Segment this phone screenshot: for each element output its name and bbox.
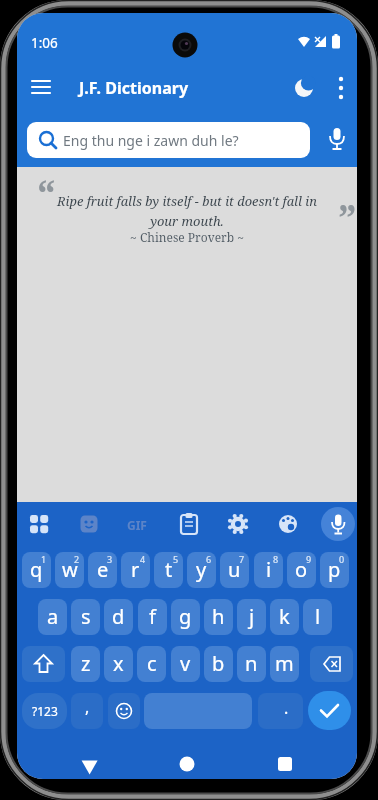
button[interactable] xyxy=(22,646,65,682)
button[interactable]: , xyxy=(71,693,103,729)
staticText: ~ Chinese Proverb ~ xyxy=(17,229,357,245)
button[interactable]: h xyxy=(204,599,233,635)
button[interactable]: u xyxy=(220,552,249,588)
button[interactable]: l xyxy=(303,599,332,635)
staticText: t xyxy=(165,556,173,583)
staticText: z xyxy=(81,650,91,677)
staticText: q xyxy=(30,556,43,583)
staticText: , xyxy=(85,696,90,718)
staticText: 7 xyxy=(239,553,245,565)
staticText: j xyxy=(249,603,255,630)
staticText: l xyxy=(315,603,321,630)
button[interactable] xyxy=(321,507,355,541)
button[interactable] xyxy=(263,748,303,779)
button[interactable]: q xyxy=(22,552,51,588)
button[interactable]: GIF xyxy=(127,517,147,533)
button[interactable]: t xyxy=(154,552,183,588)
staticText: 4 xyxy=(140,553,146,565)
staticText: “ xyxy=(37,167,56,219)
button[interactable]: y xyxy=(187,552,216,588)
staticText: o xyxy=(295,556,308,583)
staticText: r xyxy=(131,556,140,583)
button[interactable] xyxy=(289,73,319,103)
button[interactable]: w xyxy=(55,552,84,588)
button[interactable] xyxy=(25,73,57,103)
staticText: 1:06 xyxy=(31,34,58,52)
staticText: p xyxy=(328,556,341,583)
button[interactable] xyxy=(224,510,252,538)
staticText: 8 xyxy=(273,553,279,565)
staticText: e xyxy=(97,556,109,583)
button[interactable] xyxy=(323,125,351,155)
staticText: . xyxy=(284,697,289,719)
staticText: d xyxy=(112,603,125,630)
staticText: x xyxy=(113,650,124,677)
staticText: J.F. Dictionary xyxy=(79,77,189,99)
staticText: 0 xyxy=(339,553,345,565)
button[interactable]: ?123 xyxy=(22,693,67,729)
button[interactable]: a xyxy=(38,599,67,635)
button[interactable]: j xyxy=(237,599,266,635)
button[interactable]: k xyxy=(270,599,299,635)
button[interactable]: r xyxy=(121,552,150,588)
button[interactable]: n xyxy=(237,646,266,682)
staticText: Ripe fruit falls by itself - but it does… xyxy=(17,192,357,229)
button[interactable]: p xyxy=(320,552,349,588)
button[interactable]: f xyxy=(138,599,167,635)
staticText: g xyxy=(179,603,192,630)
button[interactable]: z xyxy=(71,646,100,682)
button[interactable] xyxy=(25,510,53,538)
staticText: a xyxy=(47,603,59,630)
button[interactable] xyxy=(75,510,103,538)
staticText: v xyxy=(180,650,191,677)
staticText: i xyxy=(266,556,272,583)
button[interactable]: g xyxy=(171,599,200,635)
staticText: 3 xyxy=(107,553,113,565)
staticText: w xyxy=(62,556,78,583)
button[interactable]: d xyxy=(104,599,133,635)
staticText: n xyxy=(245,650,258,677)
button[interactable]: Eng thu nge i zawn duh le? xyxy=(27,122,310,158)
staticText: 1 xyxy=(41,553,47,565)
button[interactable]: v xyxy=(171,646,200,682)
staticText: 5 xyxy=(173,553,179,565)
staticText: 6 xyxy=(206,553,212,565)
button[interactable]: o xyxy=(287,552,316,588)
button[interactable]: . xyxy=(258,693,303,729)
button[interactable] xyxy=(108,693,140,729)
staticText: h xyxy=(212,603,225,630)
button[interactable]: e xyxy=(88,552,117,588)
staticText: c xyxy=(147,650,157,677)
button[interactable] xyxy=(165,748,205,779)
staticText: y xyxy=(196,556,207,583)
staticText: s xyxy=(81,603,91,630)
staticText: Eng thu nge i zawn duh le? xyxy=(63,131,239,150)
button[interactable]: b xyxy=(204,646,233,682)
button[interactable]: s xyxy=(71,599,100,635)
staticText: m xyxy=(275,650,294,677)
staticText: f xyxy=(149,603,156,630)
staticText: 9 xyxy=(306,553,312,565)
staticText: ?123 xyxy=(32,703,58,719)
staticText: b xyxy=(212,650,225,677)
button[interactable]: i xyxy=(254,552,283,588)
button[interactable] xyxy=(308,691,351,730)
button[interactable]: c xyxy=(137,646,166,682)
button[interactable] xyxy=(175,510,203,538)
staticText: k xyxy=(279,603,290,630)
button[interactable]: m xyxy=(270,646,299,682)
button[interactable] xyxy=(69,748,109,779)
staticText: u xyxy=(228,556,241,583)
staticText: 2 xyxy=(74,553,80,565)
button[interactable] xyxy=(144,693,252,729)
button[interactable]: x xyxy=(104,646,133,682)
button[interactable] xyxy=(274,510,302,538)
button[interactable] xyxy=(310,646,353,682)
button[interactable] xyxy=(329,73,353,103)
staticText: ” xyxy=(338,191,357,243)
